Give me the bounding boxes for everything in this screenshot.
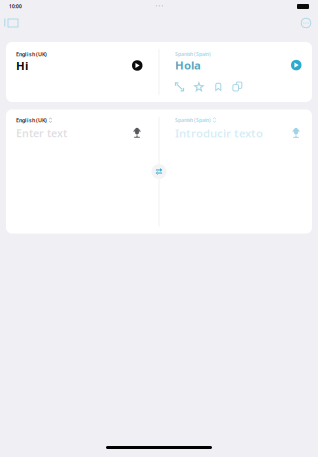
staticText: English (UK) (16, 50, 47, 58)
staticText: 10:00 (9, 3, 22, 10)
staticText: English (UK) (16, 116, 47, 124)
button[interactable]: Dictate Spanish (290, 128, 301, 139)
staticText: Enter text (16, 126, 67, 140)
button[interactable]: Copy (233, 82, 242, 91)
button[interactable]: Full screen (175, 82, 184, 91)
button[interactable]: Show sidebar (2, 14, 24, 32)
button[interactable]: Dictionary (214, 82, 223, 91)
button[interactable]: Play translation (291, 60, 301, 70)
staticText: Introducir texto (175, 125, 263, 141)
button[interactable]: Dictate English (131, 127, 142, 138)
staticText: Spanish (Spain) (175, 50, 211, 57)
button[interactable]: Swap languages (151, 164, 166, 179)
button[interactable]: Favourite (194, 82, 203, 91)
staticText: Spanish (Spain) (175, 116, 211, 123)
staticText: Hi (16, 58, 28, 73)
button[interactable]: More options (296, 14, 316, 32)
staticText: • • • (155, 3, 163, 10)
button[interactable]: Play original (132, 60, 142, 71)
staticText: Hola (175, 57, 201, 73)
